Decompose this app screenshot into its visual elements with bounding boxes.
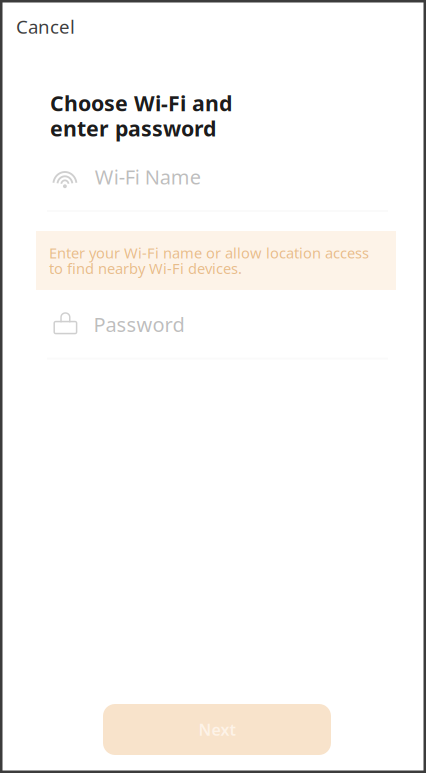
staticText: Enter your Wi-Fi name or allow location … xyxy=(49,243,369,278)
staticText: Next xyxy=(198,719,235,740)
button[interactable]: Next xyxy=(103,704,331,755)
staticText: Cancel xyxy=(16,14,75,39)
staticText: Password xyxy=(94,311,185,338)
staticText: Wi-Fi Name xyxy=(95,163,201,190)
button[interactable]: Cancel xyxy=(0,0,89,51)
button[interactable]: Wi-Fi Name xyxy=(50,160,387,212)
staticText: Choose Wi-Fi and enter password xyxy=(50,89,232,142)
button[interactable]: Password xyxy=(50,308,387,360)
